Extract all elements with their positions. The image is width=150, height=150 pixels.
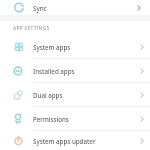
staticText: Installed apps xyxy=(33,67,75,75)
button[interactable]: Permissions xyxy=(0,107,150,131)
staticText: APP SETTINGS xyxy=(13,25,50,32)
staticText: System apps updater xyxy=(33,137,96,145)
button[interactable]: System apps xyxy=(0,35,150,59)
staticText: Dual apps xyxy=(33,91,63,99)
staticText: Permissions xyxy=(33,115,69,123)
button[interactable]: Installed apps xyxy=(0,59,150,83)
button[interactable]: System apps updater xyxy=(0,131,150,150)
button[interactable]: Sync xyxy=(0,0,150,15)
button[interactable]: Dual apps xyxy=(0,83,150,107)
staticText: System apps xyxy=(33,43,71,51)
staticText: Sync xyxy=(33,4,47,12)
